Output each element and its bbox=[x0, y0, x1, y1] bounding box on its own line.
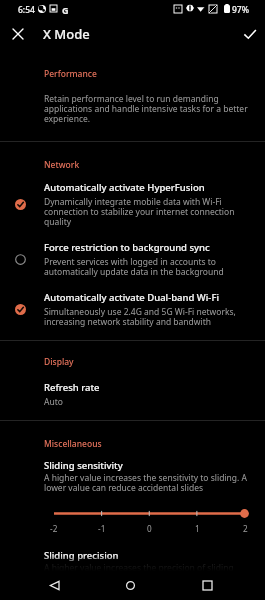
staticText: -2 bbox=[50, 523, 58, 534]
staticText: Dynamically integrate mobile data with W… bbox=[44, 196, 249, 228]
button[interactable]: Force restriction to background sync bbox=[0, 239, 265, 275]
staticText: Simultaneously use 2.4G and 5G Wi-Fi net… bbox=[44, 306, 249, 328]
button[interactable]: Refresh rate bbox=[0, 377, 265, 407]
staticText: 6:54 bbox=[18, 4, 35, 16]
button[interactable]: Home bbox=[116, 571, 145, 600]
staticText: Network bbox=[44, 159, 80, 171]
staticText: 97% bbox=[232, 4, 249, 16]
button[interactable]: Automatically activate HyperFusion bbox=[0, 179, 265, 225]
staticText: A higher value increases the precision o… bbox=[44, 562, 249, 574]
button[interactable]: Automatically activate Dual-band Wi-Fi bbox=[0, 289, 265, 325]
staticText: G bbox=[62, 4, 69, 16]
staticText: Automatically activate HyperFusion bbox=[44, 181, 205, 194]
staticText: Auto bbox=[44, 396, 63, 408]
staticText: X Mode bbox=[43, 25, 90, 43]
staticText: 0 bbox=[147, 523, 152, 534]
staticText: -1 bbox=[98, 523, 106, 534]
staticText: Display bbox=[44, 356, 74, 368]
staticText: 1 bbox=[195, 523, 200, 534]
staticText: 2 bbox=[243, 523, 248, 534]
staticText: A higher value increases the sensitivity… bbox=[44, 472, 249, 494]
button[interactable]: Confirm bbox=[238, 22, 262, 46]
staticText: Sliding sensitivity bbox=[44, 459, 123, 472]
staticText: Prevent services with logged in accounts… bbox=[44, 256, 249, 278]
staticText: Refresh rate bbox=[44, 381, 100, 394]
staticText: Miscellaneous bbox=[44, 438, 102, 450]
button[interactable]: Back bbox=[40, 571, 69, 600]
staticText: Retain performance level to run demandin… bbox=[44, 93, 249, 125]
staticText: Sliding precision bbox=[44, 549, 119, 562]
staticText: Performance bbox=[44, 68, 97, 80]
staticText: Automatically activate Dual-band Wi-Fi bbox=[44, 291, 219, 304]
button[interactable]: Close bbox=[6, 22, 30, 46]
staticText: Force restriction to background sync bbox=[44, 241, 210, 254]
button[interactable]: Recents bbox=[193, 571, 222, 600]
